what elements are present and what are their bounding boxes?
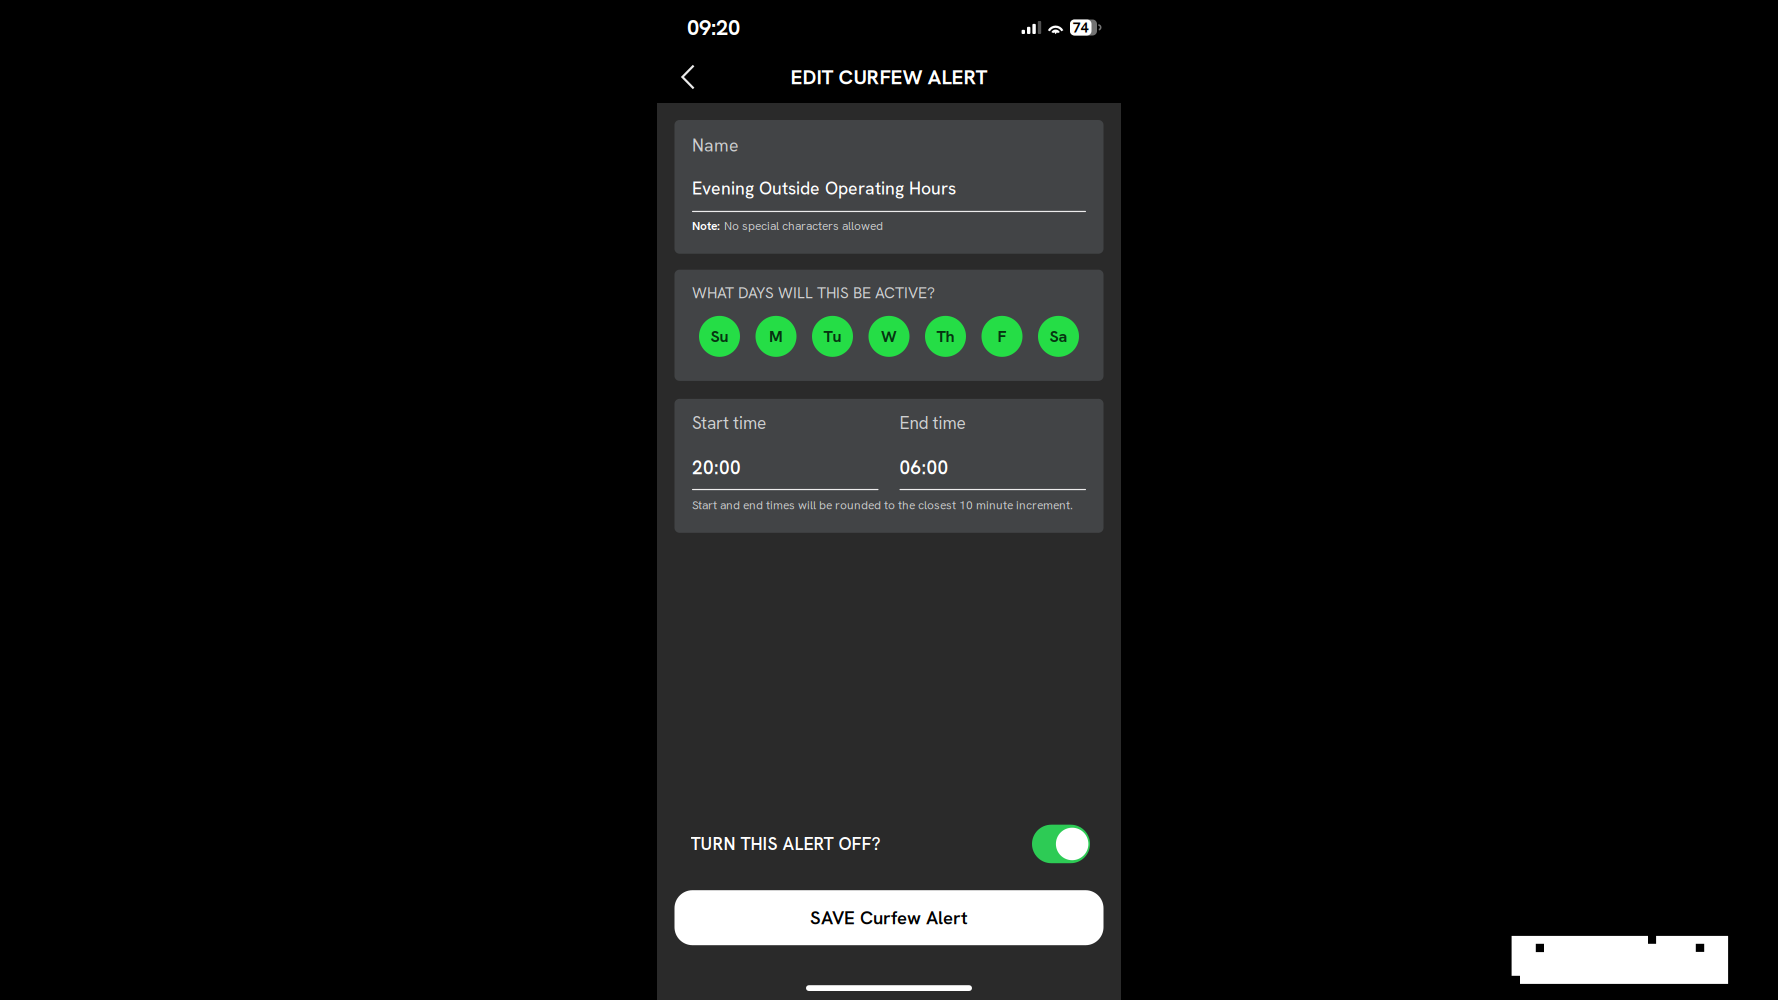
button[interactable]: M <box>755 316 796 357</box>
button[interactable]: Su <box>699 316 740 357</box>
staticText: 06:00 <box>899 455 948 480</box>
staticText: 09:20 <box>687 13 740 42</box>
button[interactable]: Turn this alert off <box>1032 825 1090 863</box>
button[interactable]: SAVE Curfew Alert <box>674 890 1103 945</box>
staticText: F <box>997 326 1006 347</box>
button[interactable]: Back <box>667 57 709 101</box>
staticText: 74 <box>1073 18 1089 37</box>
button[interactable]: Sa <box>1038 316 1079 357</box>
staticText: Sa <box>1049 326 1067 347</box>
staticText: End time <box>899 412 965 434</box>
button[interactable]: Start time <box>692 412 878 490</box>
staticText: W <box>881 326 897 347</box>
staticText: TURN THIS ALERT OFF? <box>690 832 880 855</box>
staticText: Start time <box>692 412 766 434</box>
staticText: Su <box>710 326 728 347</box>
button[interactable]: Th <box>925 316 966 357</box>
staticText: Th <box>936 326 954 347</box>
staticText: Evening Outside Operating Hours <box>692 177 956 200</box>
staticText: Start and end times will be rounded to t… <box>692 497 1073 513</box>
staticText: Note: <box>692 218 720 234</box>
button[interactable]: F <box>981 316 1022 357</box>
button[interactable]: End time <box>899 412 1086 490</box>
button[interactable]: Tu <box>812 316 853 357</box>
staticText: Tu <box>823 326 841 347</box>
staticText: No special characters allowed <box>724 218 883 234</box>
button[interactable]: W <box>868 316 909 357</box>
staticText: WHAT DAYS WILL THIS BE ACTIVE? <box>692 283 935 303</box>
staticText: Name <box>692 134 739 157</box>
staticText: EDIT CURFEW ALERT <box>790 64 987 90</box>
staticText: SAVE Curfew Alert <box>810 906 968 930</box>
staticText: M <box>769 326 783 347</box>
staticText: 20:00 <box>692 455 741 480</box>
